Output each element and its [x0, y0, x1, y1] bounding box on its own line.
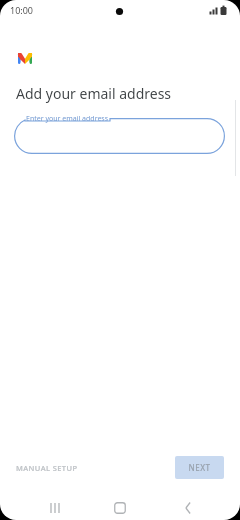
button[interactable]: Recent apps [40, 492, 70, 520]
staticText: MANUAL SETUP [16, 463, 78, 473]
button[interactable]: Home [105, 492, 135, 520]
staticText: Add your email address [16, 84, 172, 103]
other: Gmail [18, 53, 32, 64]
staticText: Enter your email address [26, 114, 109, 124]
button[interactable]: Back [172, 492, 202, 520]
button[interactable]: MANUAL SETUP [10, 459, 86, 476]
staticText: 10:00 [10, 4, 34, 16]
button[interactable] [14, 118, 225, 154]
staticText: NEXT [188, 462, 211, 473]
button[interactable]: NEXT [175, 456, 224, 479]
